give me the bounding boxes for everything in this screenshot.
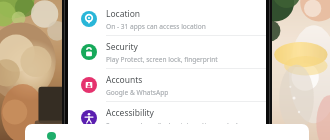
staticText: Location [106, 8, 141, 20]
staticText: Accessibility [106, 107, 154, 119]
staticText: On - 31 apps can access location [106, 22, 206, 31]
button[interactable]: Accessibility [68, 102, 266, 134]
staticText: Security [106, 41, 138, 53]
button[interactable]: Location [68, 3, 266, 35]
other: Privacy [47, 132, 56, 140]
staticText: Google & WhatsApp [106, 88, 169, 97]
button[interactable]: Security [68, 36, 266, 68]
button[interactable]: Privacy [25, 124, 309, 140]
staticText: Accounts [106, 74, 143, 86]
staticText: Screen readers, display, interaction con… [106, 121, 241, 130]
button[interactable]: Accounts [68, 69, 266, 101]
staticText: Play Protect, screen lock, fingerprint [106, 55, 218, 64]
